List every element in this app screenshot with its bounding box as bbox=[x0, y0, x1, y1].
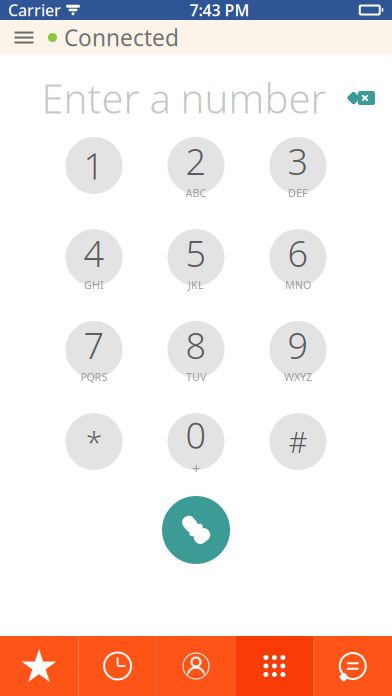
button[interactable]: 1 bbox=[43, 137, 145, 194]
button[interactable]: 7 bbox=[43, 321, 145, 378]
staticText: JKL bbox=[188, 278, 204, 292]
staticText: GHI bbox=[84, 278, 104, 292]
staticText: + bbox=[192, 459, 200, 478]
staticText: 4 bbox=[83, 229, 104, 277]
staticText: Enter a number bbox=[41, 71, 326, 124]
staticText: 9 bbox=[287, 321, 308, 369]
button[interactable]: Favorites bbox=[0, 636, 78, 696]
button[interactable]: 4 bbox=[43, 229, 145, 286]
staticText: WXYZ bbox=[284, 370, 312, 384]
staticText: DEF bbox=[288, 186, 308, 200]
staticText: ★ bbox=[19, 640, 60, 692]
button[interactable]: 0 bbox=[145, 413, 247, 470]
button[interactable]: * bbox=[43, 413, 145, 470]
staticText: 1 bbox=[83, 142, 104, 189]
button[interactable]: Messages bbox=[314, 636, 392, 696]
button[interactable]: 2 bbox=[145, 137, 247, 194]
button[interactable]: Call bbox=[162, 496, 230, 564]
staticText: Connected bbox=[64, 22, 179, 52]
button[interactable]: Contacts bbox=[157, 636, 235, 696]
staticText: 3 bbox=[287, 137, 308, 185]
staticText: 2 bbox=[185, 137, 206, 185]
button[interactable]: Keypad bbox=[235, 636, 314, 696]
button[interactable]: 9 bbox=[247, 321, 349, 378]
staticText: ABC bbox=[185, 186, 206, 200]
button[interactable]: # bbox=[247, 413, 349, 470]
button[interactable]: 5 bbox=[145, 229, 247, 286]
staticText: 5 bbox=[185, 229, 206, 277]
button[interactable]: 8 bbox=[145, 321, 247, 378]
staticText: 7:43 PM bbox=[189, 0, 249, 21]
button[interactable]: 6 bbox=[247, 229, 349, 286]
staticText: # bbox=[288, 422, 307, 461]
staticText: 6 bbox=[287, 229, 308, 277]
button[interactable]: 3 bbox=[247, 137, 349, 194]
staticText: 7 bbox=[83, 321, 104, 369]
staticText: TUV bbox=[186, 370, 206, 384]
staticText: 8 bbox=[185, 321, 206, 369]
staticText: Carrier bbox=[8, 0, 61, 21]
staticText: MNO bbox=[285, 278, 311, 292]
staticText: * bbox=[86, 422, 102, 461]
button[interactable]: Recents bbox=[78, 636, 157, 696]
staticText: 0 bbox=[185, 411, 206, 459]
button[interactable]: Menu bbox=[2, 20, 46, 55]
button[interactable]: Delete bbox=[340, 78, 384, 118]
staticText: PQRS bbox=[80, 370, 107, 384]
